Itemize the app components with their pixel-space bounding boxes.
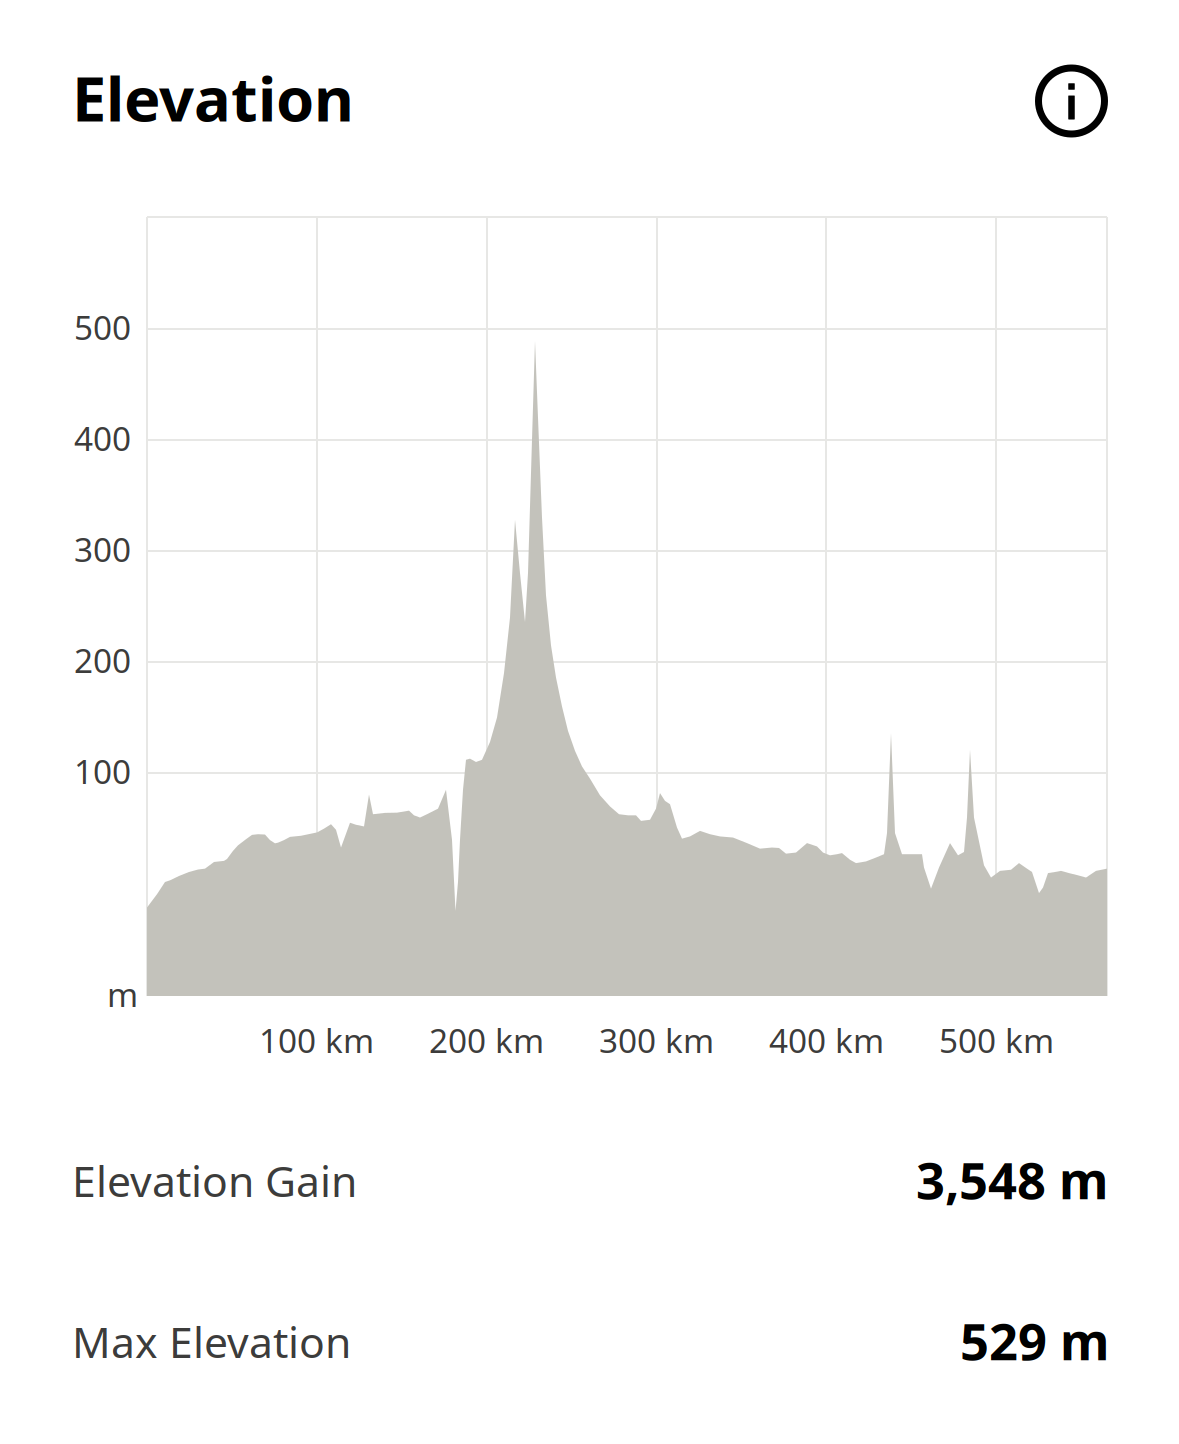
staticText: 200 km <box>429 1018 544 1062</box>
staticText: 100 km <box>259 1018 374 1062</box>
staticText: Elevation <box>72 57 354 138</box>
staticText: Elevation Gain <box>72 1152 357 1209</box>
staticText: 400 <box>74 416 131 460</box>
staticText: m <box>107 972 138 1016</box>
staticText: Max Elevation <box>72 1313 351 1370</box>
button[interactable]: About elevation <box>1025 55 1117 147</box>
staticText: 529 m <box>960 1307 1109 1374</box>
staticText: 500 km <box>939 1018 1054 1062</box>
staticText: 400 km <box>769 1018 884 1062</box>
staticText: 200 <box>74 638 131 682</box>
staticText: 500 <box>74 305 131 349</box>
staticText: 100 <box>74 749 131 793</box>
staticText: 3,548 m <box>916 1146 1108 1213</box>
staticText: 300 km <box>599 1018 714 1062</box>
staticText: 300 <box>74 527 131 571</box>
